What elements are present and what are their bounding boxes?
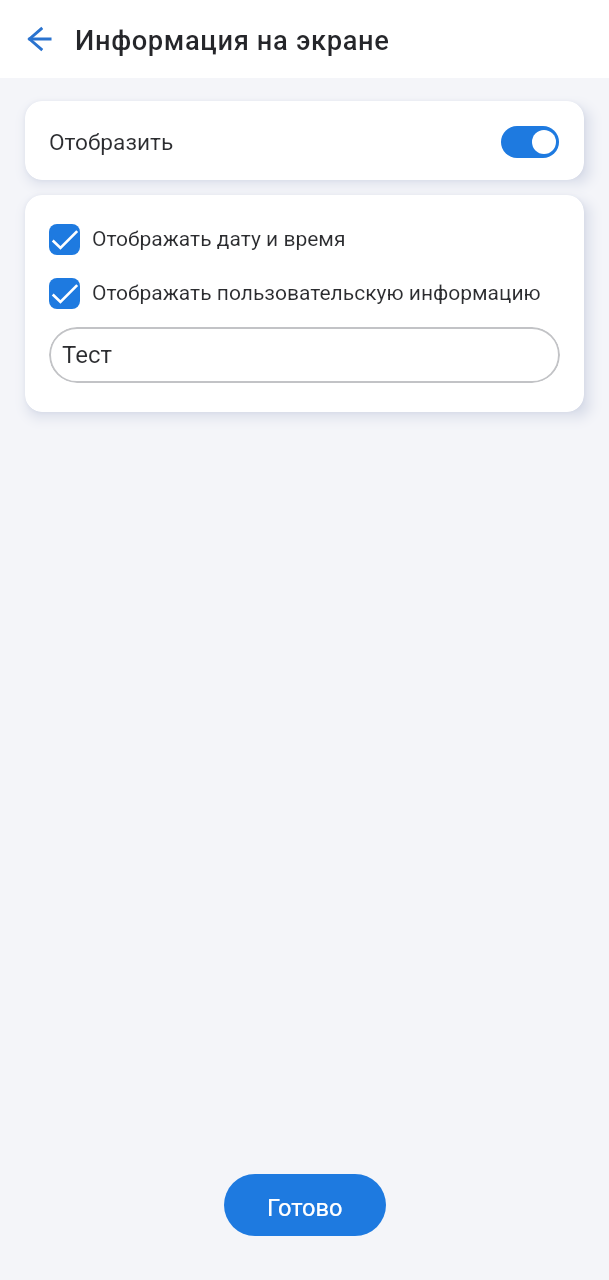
button[interactable]: Отобразить <box>501 126 559 158</box>
staticText: Отображать пользовательскую информацию <box>92 281 541 306</box>
button[interactable]: Готово <box>224 1174 386 1236</box>
button[interactable]: Отображать пользовательскую информацию <box>25 266 584 320</box>
button[interactable]: Отображать дату и время <box>25 212 584 266</box>
button[interactable]: Тест <box>49 327 560 383</box>
staticText: Информация на экране <box>75 25 390 57</box>
staticText: Готово <box>267 1194 343 1222</box>
staticText: Тест <box>62 341 112 369</box>
button[interactable]: Назад <box>16 15 64 63</box>
button[interactable]: Отобразить <box>25 101 584 180</box>
staticText: Отображать дату и время <box>92 227 346 252</box>
staticText: Отобразить <box>49 129 174 156</box>
